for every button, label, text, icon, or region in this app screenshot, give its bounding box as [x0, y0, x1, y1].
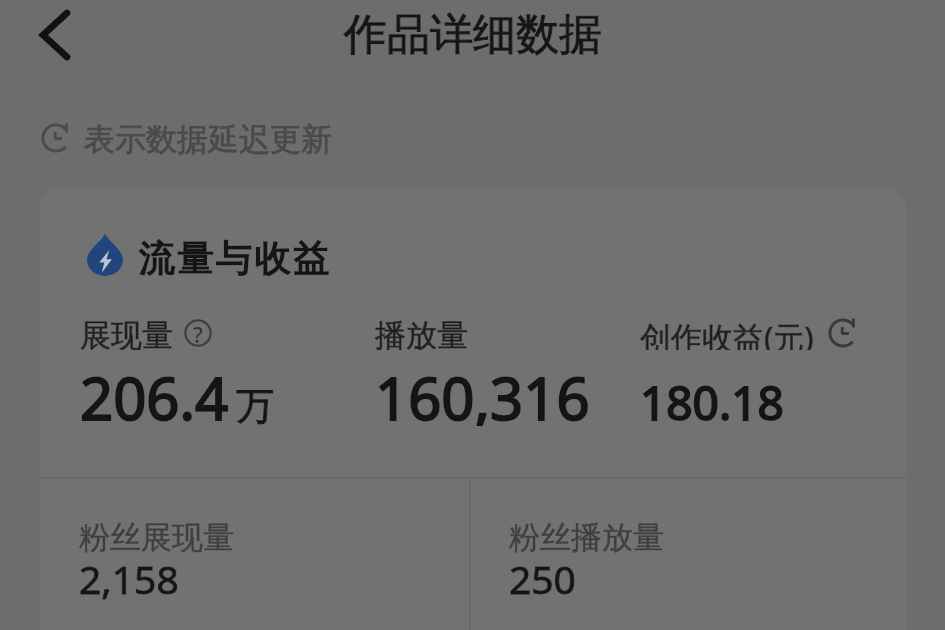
button[interactable]: 表示数据延迟更新 — [41, 120, 332, 156]
staticText: 作品详细数据 — [344, 8, 602, 62]
staticText: 粉丝播放量 — [509, 518, 664, 557]
staticText: 180.18 — [640, 371, 784, 434]
staticText: 创作收益(元) — [640, 316, 814, 350]
button[interactable]: 播放量 — [375, 316, 640, 428]
staticText: 250 — [509, 552, 576, 605]
button[interactable]: 粉丝展现量 — [79, 518, 459, 610]
button[interactable]: Delayed data — [828, 318, 858, 348]
staticText: 播放量 — [375, 316, 468, 350]
staticText: 粉丝展现量 — [79, 518, 234, 557]
staticText: 250 — [509, 552, 576, 605]
button[interactable]: 展现量 — [80, 316, 375, 428]
staticText: 表示数据延迟更新 — [84, 120, 332, 156]
staticText: 万 — [236, 382, 274, 430]
staticText: 流量与收益 — [137, 236, 330, 281]
staticText: 160,316 — [375, 358, 590, 426]
staticText: 万 — [236, 382, 274, 430]
staticText: 粉丝展现量 — [79, 518, 234, 557]
button[interactable]: Help — [184, 319, 212, 347]
staticText: 206.4 — [80, 358, 229, 426]
staticText: 播放量 — [375, 316, 468, 350]
staticText: 2,158 — [79, 552, 179, 605]
button[interactable]: 流量与收益 — [87, 230, 330, 280]
staticText: 粉丝播放量 — [509, 518, 664, 557]
staticText: 作品详细数据 — [344, 8, 602, 62]
button[interactable]: Back — [21, 0, 89, 70]
staticText: 创作收益(元) — [640, 316, 814, 350]
staticText: 206.4 — [80, 358, 229, 426]
staticText: 表示数据延迟更新 — [84, 120, 332, 156]
staticText: 160,316 — [375, 358, 590, 426]
staticText: ? — [193, 319, 203, 347]
staticText: 180.18 — [640, 371, 784, 434]
staticText: 展现量 — [80, 316, 173, 350]
staticText: 2,158 — [79, 552, 179, 605]
button[interactable]: 创作收益(元) — [640, 316, 866, 428]
button[interactable]: 粉丝播放量 — [509, 518, 889, 610]
staticText: 展现量 — [80, 316, 173, 350]
